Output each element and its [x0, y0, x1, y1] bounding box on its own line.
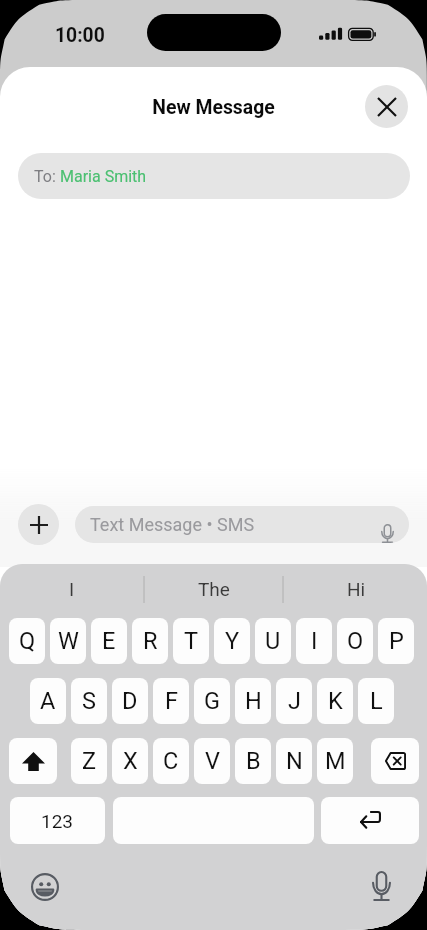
- staticText: P: [389, 627, 404, 655]
- button[interactable]: Backspace: [371, 738, 419, 784]
- button[interactable]: L: [358, 678, 394, 724]
- button[interactable]: T: [173, 618, 209, 664]
- staticText: W: [58, 627, 79, 655]
- button[interactable]: B: [235, 738, 271, 784]
- staticText: S: [82, 687, 96, 715]
- button[interactable]: E: [91, 618, 127, 664]
- staticText: X: [123, 747, 138, 775]
- staticText: A: [40, 687, 56, 715]
- staticText: N: [286, 747, 303, 775]
- staticText: K: [328, 687, 343, 715]
- staticText: Hi: [347, 578, 366, 600]
- button[interactable]: Space: [113, 797, 314, 844]
- button[interactable]: Hi: [285, 564, 427, 614]
- staticText: M: [325, 747, 346, 775]
- button[interactable]: H: [235, 678, 271, 724]
- staticText: T: [184, 627, 199, 655]
- button[interactable]: N: [276, 738, 312, 784]
- button[interactable]: X: [112, 738, 148, 784]
- button[interactable]: I: [296, 618, 332, 664]
- staticText: L: [370, 687, 383, 715]
- button[interactable]: Y: [214, 618, 250, 664]
- staticText: New Message: [0, 96, 427, 119]
- button[interactable]: Dictation: [360, 865, 402, 907]
- button[interactable]: Add attachment: [18, 504, 59, 545]
- staticText: G: [204, 687, 221, 715]
- button[interactable]: J: [276, 678, 312, 724]
- staticText: D: [122, 687, 138, 715]
- button[interactable]: Return: [321, 797, 419, 844]
- staticText: 123: [41, 810, 74, 832]
- staticText: H: [245, 687, 262, 715]
- button[interactable]: The: [143, 564, 285, 614]
- button[interactable]: W: [50, 618, 86, 664]
- button[interactable]: V: [194, 738, 230, 784]
- button[interactable]: O: [337, 618, 373, 664]
- staticText: Maria Smith: [60, 167, 147, 186]
- button[interactable]: A: [30, 678, 66, 724]
- button[interactable]: K: [317, 678, 353, 724]
- staticText: C: [163, 747, 179, 775]
- button[interactable]: M: [317, 738, 353, 784]
- staticText: B: [246, 747, 261, 775]
- button[interactable]: To:: [18, 153, 410, 199]
- staticText: Y: [225, 627, 240, 655]
- staticText: O: [347, 627, 364, 655]
- button[interactable]: Z: [71, 738, 107, 784]
- button[interactable]: Shift: [9, 738, 57, 784]
- button[interactable]: C: [153, 738, 189, 784]
- button[interactable]: F: [153, 678, 189, 724]
- button[interactable]: Emoji keyboard: [24, 866, 66, 908]
- staticText: E: [102, 627, 116, 655]
- button[interactable]: P: [378, 618, 414, 664]
- staticText: Q: [19, 627, 36, 655]
- button[interactable]: Close: [365, 85, 408, 128]
- button[interactable]: D: [112, 678, 148, 724]
- button[interactable]: 123: [10, 797, 105, 844]
- button[interactable]: S: [71, 678, 107, 724]
- button[interactable]: U: [255, 618, 291, 664]
- staticText: 10:00: [55, 24, 105, 47]
- button[interactable]: I: [0, 564, 143, 614]
- staticText: I: [311, 627, 318, 655]
- staticText: R: [143, 627, 158, 655]
- button[interactable]: G: [194, 678, 230, 724]
- staticText: V: [205, 747, 220, 775]
- staticText: Text Message • SMS: [90, 514, 255, 535]
- staticText: Z: [82, 747, 97, 775]
- staticText: I: [69, 578, 75, 600]
- staticText: U: [265, 627, 281, 655]
- staticText: J: [288, 687, 301, 715]
- staticText: F: [165, 687, 178, 715]
- staticText: The: [198, 578, 230, 600]
- staticText: To:: [34, 167, 60, 186]
- button[interactable]: R: [132, 618, 168, 664]
- button[interactable]: Text Message • SMS: [75, 506, 409, 543]
- button[interactable]: Q: [9, 618, 45, 664]
